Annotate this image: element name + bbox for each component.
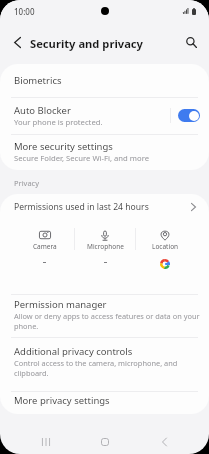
staticText: Camera bbox=[33, 242, 57, 251]
button[interactable]: Search bbox=[181, 32, 202, 53]
button[interactable]: Permission manager bbox=[0, 295, 209, 337]
staticText: Security and privacy bbox=[30, 36, 144, 51]
button[interactable]: Back bbox=[149, 429, 179, 454]
staticText: More security settings bbox=[14, 140, 113, 153]
button[interactable]: Permissions used in last 24 hours bbox=[0, 194, 209, 219]
button[interactable]: Biometrics bbox=[0, 64, 209, 96]
staticText: Control access to the camera, microphone… bbox=[14, 358, 202, 378]
button[interactable]: Back bbox=[7, 32, 28, 53]
staticText: Microphone bbox=[87, 242, 124, 251]
staticText: Auto Blocker bbox=[14, 104, 71, 117]
staticText: Privacy bbox=[14, 178, 40, 188]
staticText: Location bbox=[152, 242, 179, 251]
button[interactable]: Location bbox=[135, 227, 195, 279]
button[interactable]: Auto Blocker bbox=[0, 97, 209, 134]
button[interactable]: Home bbox=[90, 429, 120, 454]
button[interactable]: More privacy settings bbox=[0, 389, 209, 411]
button[interactable]: More security settings bbox=[0, 135, 209, 170]
staticText: Your phone is protected. bbox=[14, 117, 103, 127]
staticText: More privacy settings bbox=[14, 394, 110, 407]
staticText: Permission manager bbox=[14, 298, 107, 311]
button[interactable]: Additional privacy controls bbox=[0, 338, 209, 391]
staticText: Additional privacy controls bbox=[14, 345, 133, 358]
button[interactable]: Camera bbox=[14, 227, 75, 279]
staticText: Secure Folder, Secure Wi-Fi, and more bbox=[14, 153, 150, 163]
staticText: Biometrics bbox=[14, 74, 62, 87]
button[interactable]: Auto Blocker toggle bbox=[178, 109, 200, 122]
button[interactable]: Recent apps bbox=[30, 429, 60, 454]
staticText: 10:00 bbox=[14, 6, 35, 17]
staticText: Allow or deny apps to access features or… bbox=[14, 311, 202, 331]
staticText: Permissions used in last 24 hours bbox=[14, 201, 191, 213]
button[interactable]: Microphone bbox=[75, 227, 135, 279]
